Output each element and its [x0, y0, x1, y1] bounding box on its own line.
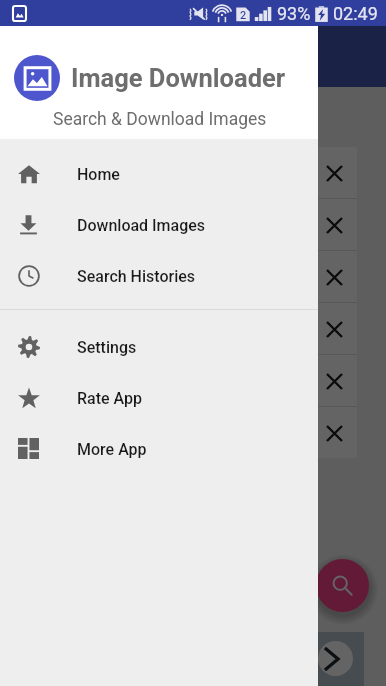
- button[interactable]: Rate App: [0, 372, 318, 423]
- button[interactable]: Remove item: [313, 412, 355, 454]
- button[interactable]: Download Images: [0, 199, 318, 250]
- button[interactable]: Home: [0, 148, 318, 199]
- staticText: Image Downloader: [71, 63, 286, 93]
- button[interactable]: Settings: [0, 321, 318, 372]
- button[interactable]: Search Histories: [0, 250, 318, 301]
- staticText: 02:49: [333, 3, 378, 24]
- staticText: Search & Download Images: [53, 109, 267, 130]
- button[interactable]: Remove item: [14, 355, 357, 406]
- staticText: Rate App: [77, 389, 143, 408]
- button[interactable]: Remove item: [313, 256, 355, 298]
- staticText: Home: [77, 165, 120, 184]
- button[interactable]: Search: [316, 559, 369, 612]
- button[interactable]: Remove item: [313, 360, 355, 402]
- button[interactable]: Remove item: [313, 152, 355, 194]
- button[interactable]: Next page: [318, 641, 353, 676]
- staticText: More App: [77, 440, 147, 459]
- staticText: 2: [240, 9, 247, 22]
- button[interactable]: More App: [0, 423, 318, 474]
- staticText: Settings: [77, 338, 137, 357]
- button[interactable]: Close navigation drawer: [0, 26, 386, 686]
- button[interactable]: Remove item: [14, 251, 357, 302]
- button[interactable]: Remove item: [14, 147, 357, 198]
- staticText: Download Images: [77, 216, 206, 235]
- button[interactable]: Remove item: [14, 303, 357, 354]
- staticText: 93%: [277, 3, 311, 24]
- button[interactable]: Remove item: [313, 308, 355, 350]
- button[interactable]: Remove item: [313, 204, 355, 246]
- button[interactable]: Remove item: [14, 199, 357, 250]
- staticText: Search Histories: [77, 267, 196, 286]
- button[interactable]: Remove item: [14, 407, 357, 458]
